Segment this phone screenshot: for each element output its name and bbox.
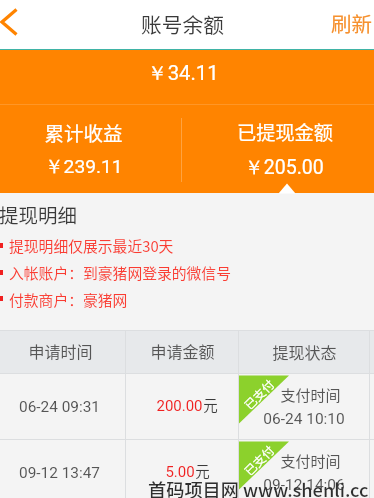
staticText: 提现明细仅展示最近30天 — [9, 235, 174, 256]
staticText: 入帐账户：到豪猪网登录的微信号 — [9, 262, 231, 283]
staticText: 06-24 10:10 — [263, 410, 345, 428]
staticText: 累计收益 — [44, 118, 123, 146]
staticText: ￥239.11 — [44, 155, 123, 179]
staticText: 200.00 — [156, 397, 203, 415]
staticText: 付款商户：豪猪网 — [9, 289, 128, 310]
staticText: 支付时间 — [280, 384, 341, 406]
staticText: 06-24 09:31 — [19, 398, 100, 416]
staticText: 账号余额 — [141, 9, 224, 39]
staticText: 提现明细 — [0, 200, 78, 228]
staticText: 元 — [203, 394, 218, 415]
staticText: 申请时间 — [28, 339, 93, 362]
button[interactable]: 刷新 — [328, 8, 374, 36]
staticText: 09-12 13:47 — [19, 464, 100, 482]
staticText: 申请金额 — [150, 339, 215, 362]
staticText: 元 — [195, 460, 210, 481]
staticText: 5.00 — [165, 463, 195, 481]
staticText: 支付时间 — [280, 450, 341, 472]
staticText: 已支付 — [240, 375, 278, 413]
staticText: 已支付 — [240, 441, 278, 479]
staticText: ￥205.00 — [244, 155, 324, 180]
staticText: ￥34.11 — [147, 60, 219, 86]
staticText: 提现状态 — [272, 340, 337, 363]
staticText: 首码项目网 www.shenli.cc — [148, 476, 369, 498]
staticText: 刷新 — [331, 8, 372, 36]
staticText: 09-12 14:06 — [263, 476, 345, 494]
staticText: 已提现金额 — [237, 118, 333, 146]
button[interactable]: Back — [0, 7, 36, 41]
